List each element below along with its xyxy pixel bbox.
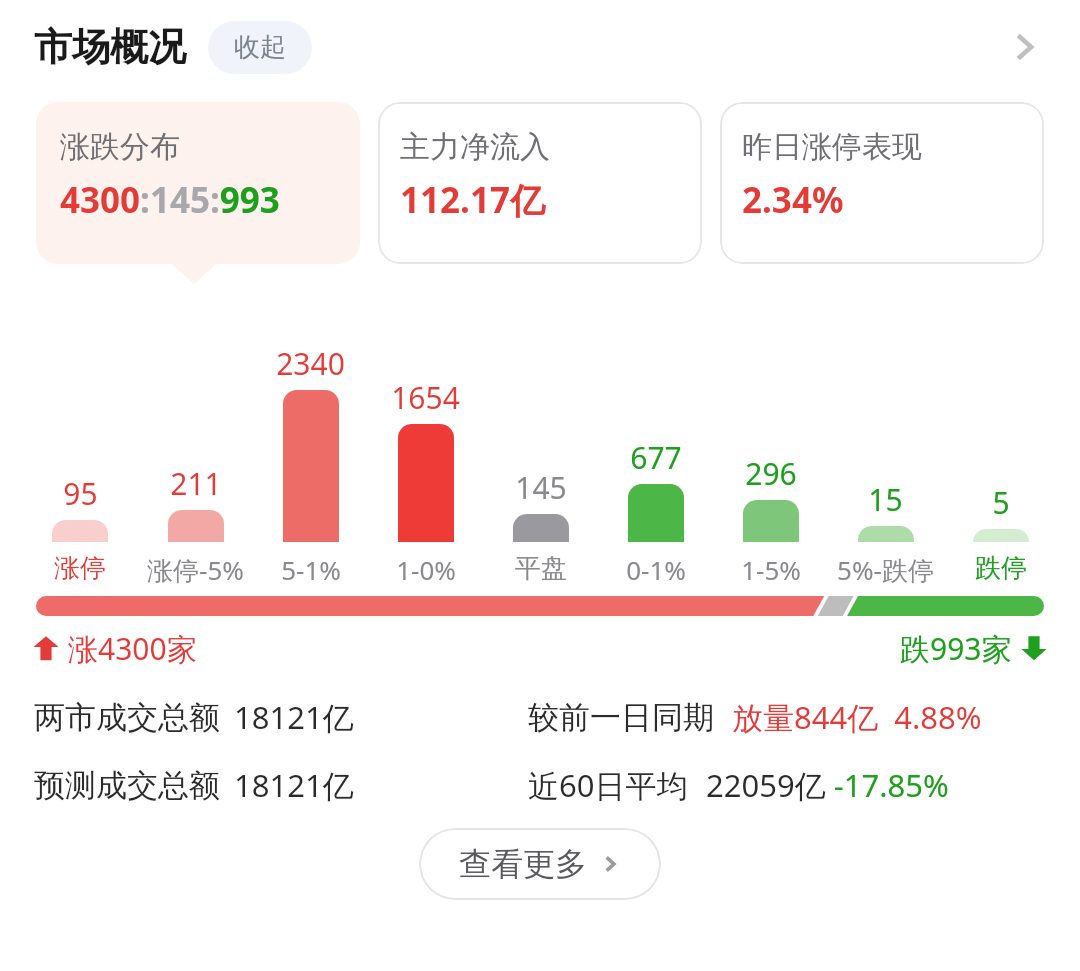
staticText: 涨跌分布: [60, 128, 180, 166]
staticText: 18121亿: [234, 696, 354, 738]
button[interactable]: More: [996, 19, 1052, 75]
staticText: 放量844亿 4.88%: [732, 696, 982, 738]
staticText: 平盘: [515, 552, 567, 585]
staticText: 112.17亿: [400, 176, 545, 224]
button[interactable]: 收起: [208, 21, 312, 74]
staticText: 近60日平均: [528, 764, 688, 806]
staticText: 预测成交总额: [34, 766, 220, 805]
staticText: 涨4300家: [68, 628, 197, 669]
staticText: 2.34%: [742, 176, 844, 224]
staticText: 1-5%: [741, 552, 801, 587]
staticText: 1-0%: [396, 552, 456, 587]
staticText: 145: [515, 467, 567, 508]
staticText: 296: [745, 453, 797, 494]
button[interactable]: 昨日涨停表现: [720, 102, 1044, 264]
staticText: 2340: [276, 343, 345, 384]
staticText: 昨日涨停表现: [742, 128, 922, 166]
staticText: 较前一日同期: [528, 698, 714, 737]
staticText: 市场概况: [34, 23, 186, 71]
staticText: 211: [170, 463, 222, 504]
button[interactable]: 涨跌分布: [36, 102, 360, 264]
staticText: 15: [868, 479, 903, 520]
staticText: 1654: [391, 377, 460, 418]
staticText: 4300:145:993: [60, 176, 280, 224]
staticText: 95: [63, 473, 98, 514]
staticText: 18121亿: [234, 764, 354, 806]
staticText: 收起: [234, 31, 286, 64]
button[interactable]: 主力净流入: [378, 102, 702, 264]
staticText: 5%-跌停: [837, 552, 934, 588]
staticText: 0-1%: [626, 552, 686, 587]
staticText: 跌993家: [900, 628, 1012, 669]
staticText: 涨停: [54, 552, 106, 585]
button[interactable]: 查看更多: [419, 828, 661, 900]
staticText: 5: [992, 482, 1010, 523]
staticText: 查看更多: [459, 844, 587, 884]
staticText: 涨停-5%: [147, 552, 244, 588]
staticText: 主力净流入: [400, 128, 550, 166]
staticText: 677: [630, 437, 682, 478]
staticText: 两市成交总额: [34, 698, 220, 737]
staticText: 跌停: [975, 552, 1027, 585]
staticText: 5-1%: [281, 552, 341, 587]
staticText: 22059亿 -17.85%: [706, 764, 949, 806]
